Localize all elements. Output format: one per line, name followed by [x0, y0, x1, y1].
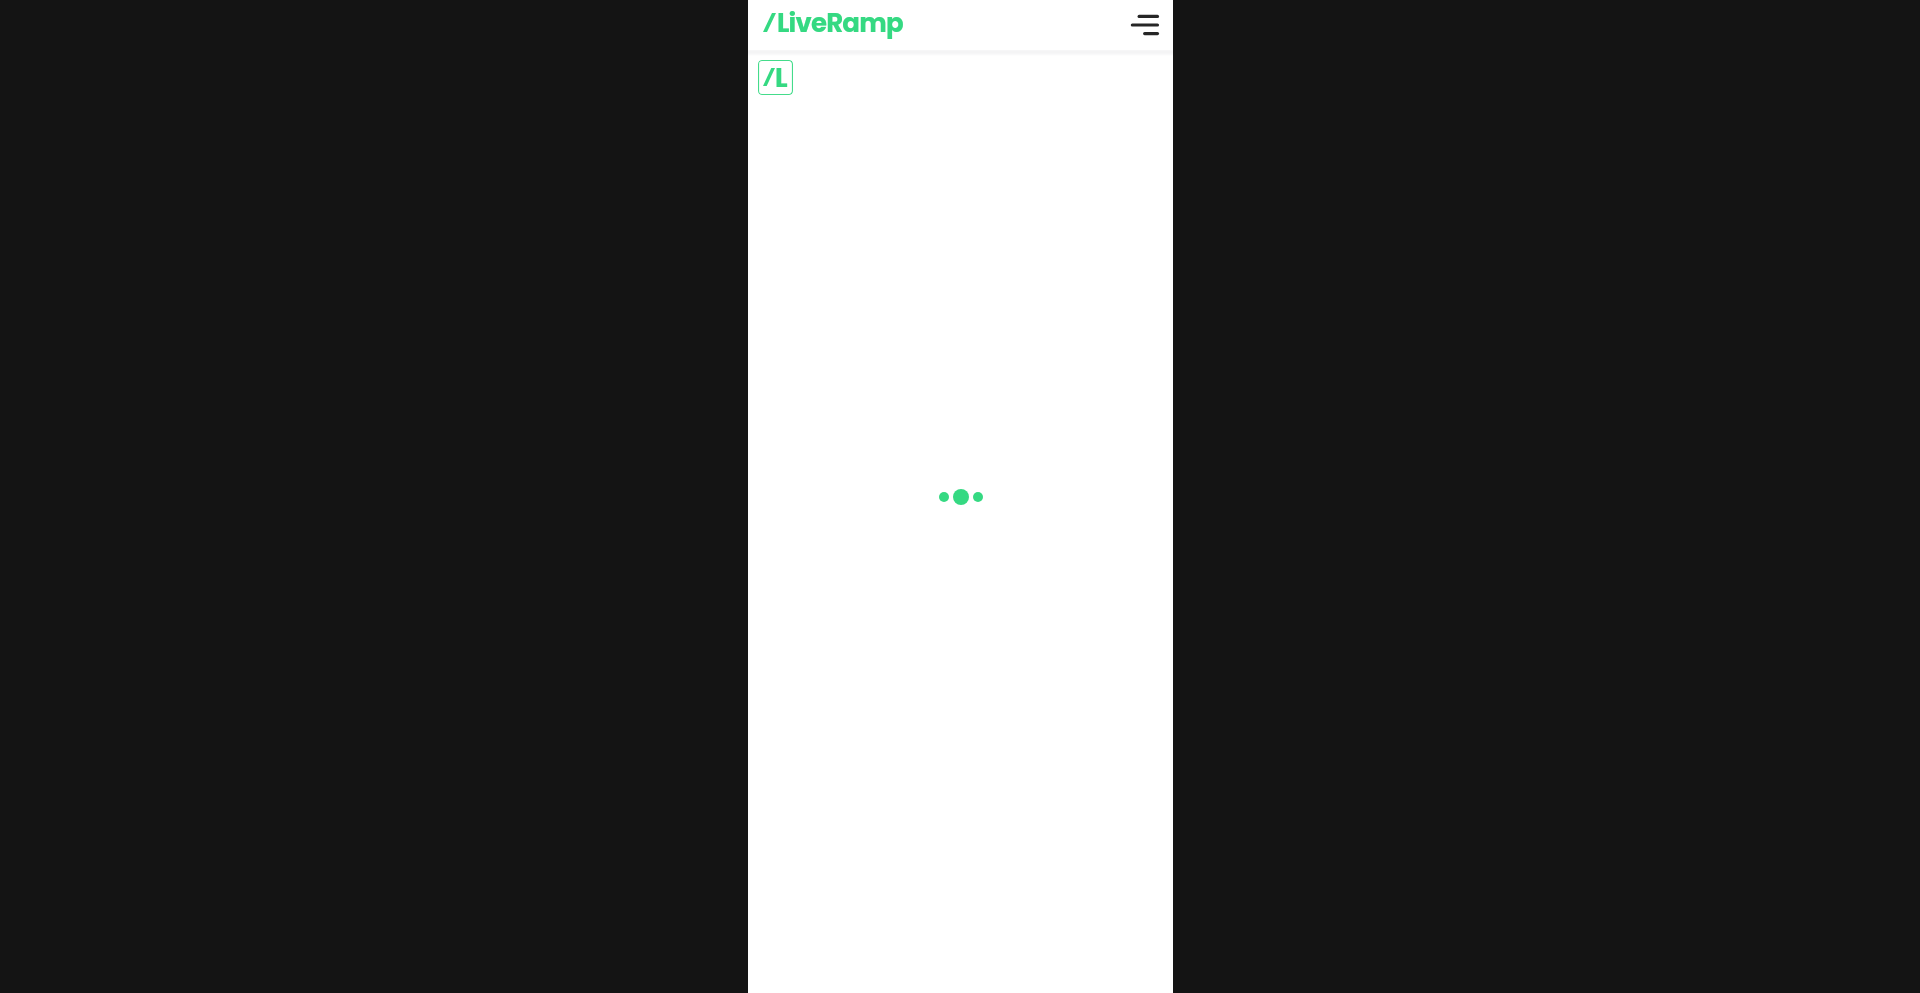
- staticText: LiveRamp: [777, 5, 903, 39]
- other: Loading: [939, 489, 983, 505]
- staticText: L: [775, 60, 788, 94]
- button[interactable]: LiveRamp: [763, 3, 903, 37]
- button[interactable]: Open navigation menu: [1128, 5, 1168, 45]
- button[interactable]: LiveRamp home: [758, 60, 793, 95]
